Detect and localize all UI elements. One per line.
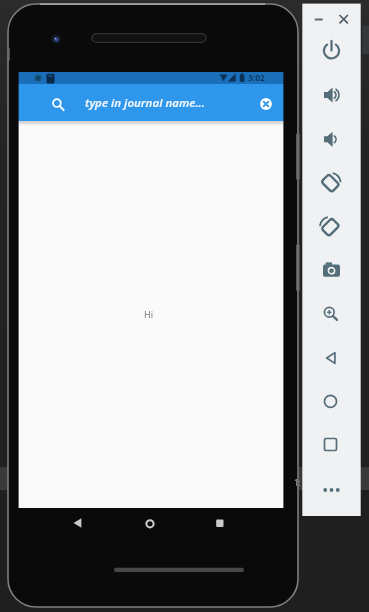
button[interactable] [317, 125, 345, 153]
button[interactable] [204, 510, 232, 538]
button[interactable] [62, 510, 90, 538]
button[interactable] [19, 84, 283, 121]
button[interactable] [317, 256, 345, 284]
button[interactable] [317, 344, 345, 372]
staticText: Hi [144, 308, 153, 320]
staticText: 1: [294, 477, 301, 488]
button[interactable] [317, 170, 345, 198]
button[interactable] [308, 12, 324, 28]
button[interactable] [317, 36, 345, 64]
button[interactable] [336, 12, 352, 28]
button[interactable] [317, 476, 345, 504]
button[interactable] [317, 387, 345, 415]
button[interactable] [258, 96, 274, 112]
button[interactable] [136, 510, 164, 538]
button[interactable] [317, 81, 345, 109]
button[interactable] [317, 214, 345, 242]
button[interactable] [317, 430, 345, 458]
staticText: 3:02 [248, 72, 265, 84]
staticText: type in journal name... [85, 95, 205, 111]
button[interactable] [317, 300, 345, 328]
